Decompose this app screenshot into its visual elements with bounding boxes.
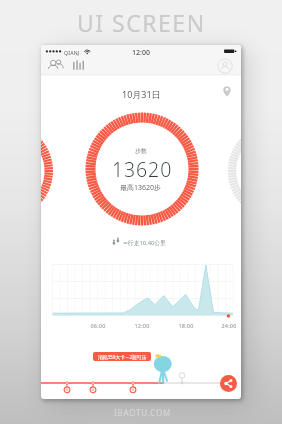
button[interactable]: 消耗350大卡～2瓶可乐 [93, 352, 151, 361]
staticText: 06:00 [89, 322, 107, 331]
staticText: 10月31日 [122, 88, 161, 100]
staticText: ≈行走10.40公里 [123, 239, 166, 247]
staticText: 12:00 [133, 322, 151, 331]
staticText: 步数 [135, 147, 147, 155]
staticText: IBAOTU.COM [114, 407, 172, 418]
staticText: 13620 [112, 156, 173, 183]
button[interactable]: Statistics [72, 59, 86, 73]
button[interactable]: Share [220, 375, 237, 392]
button[interactable]: Profile [217, 58, 233, 74]
staticText: 最高13620步 [120, 183, 162, 193]
button[interactable]: Friends [46, 59, 62, 73]
button[interactable]: Activity [63, 386, 71, 394]
staticText: 18:00 [177, 322, 195, 331]
staticText: 消耗350大卡～2瓶可乐 [98, 354, 147, 360]
staticText: QIANJ [64, 49, 80, 56]
button[interactable]: Activity [89, 386, 97, 394]
staticText: 12:00 [132, 48, 150, 58]
button[interactable]: Location [220, 83, 234, 99]
button[interactable]: Activity [129, 386, 137, 394]
staticText: UI SCREEN [77, 7, 206, 38]
staticText: 24:00 [220, 322, 238, 331]
